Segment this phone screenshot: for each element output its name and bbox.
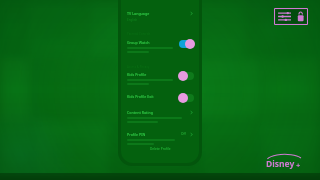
button[interactable]: Profile PIN: [127, 132, 194, 147]
button[interactable]: Toggle off: [179, 94, 194, 102]
staticText: Group Watch: [127, 40, 150, 45]
staticText: Content Rating: [127, 110, 153, 115]
staticText: +: [296, 160, 301, 170]
button[interactable]: TV Language: [127, 11, 194, 22]
staticText: Profile PIN: [127, 132, 146, 137]
staticText: English: [127, 18, 138, 22]
button[interactable]: Parental controls badge: [274, 8, 308, 25]
staticText: Disney: [266, 158, 295, 170]
button[interactable]: Kids Profile Exit: [127, 94, 194, 102]
staticText: Delete Profile: [150, 147, 171, 151]
other: Open: [189, 110, 194, 115]
staticText: Off: [181, 132, 186, 136]
button[interactable]: Group Watch: [127, 40, 194, 55]
button[interactable]: Kids Profile: [127, 72, 194, 87]
button[interactable]: Content Rating: [127, 110, 194, 125]
staticText: TV Language: [127, 11, 150, 16]
other: Open: [189, 11, 194, 16]
button[interactable]: Toggle on: [179, 40, 194, 48]
staticText: Kids Profile Exit: [127, 94, 154, 99]
other: Disney Plus: [264, 154, 310, 170]
staticText: Kids Profile: [127, 72, 147, 77]
other: Open: [189, 132, 194, 137]
button[interactable]: Toggle off: [179, 72, 194, 80]
